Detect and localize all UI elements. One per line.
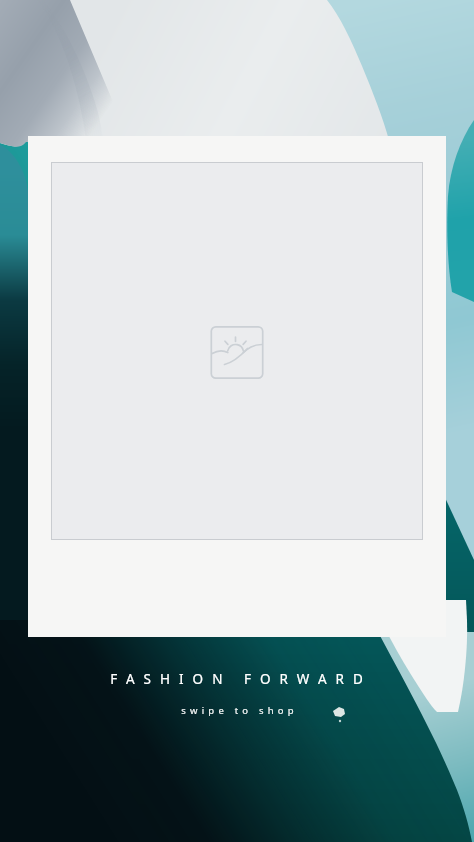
button[interactable]: FASHION FORWARD — [0, 655, 474, 735]
button[interactable] — [28, 136, 446, 637]
staticText: FASHION FORWARD — [110, 670, 372, 688]
staticText: swipe to shop — [181, 704, 298, 717]
